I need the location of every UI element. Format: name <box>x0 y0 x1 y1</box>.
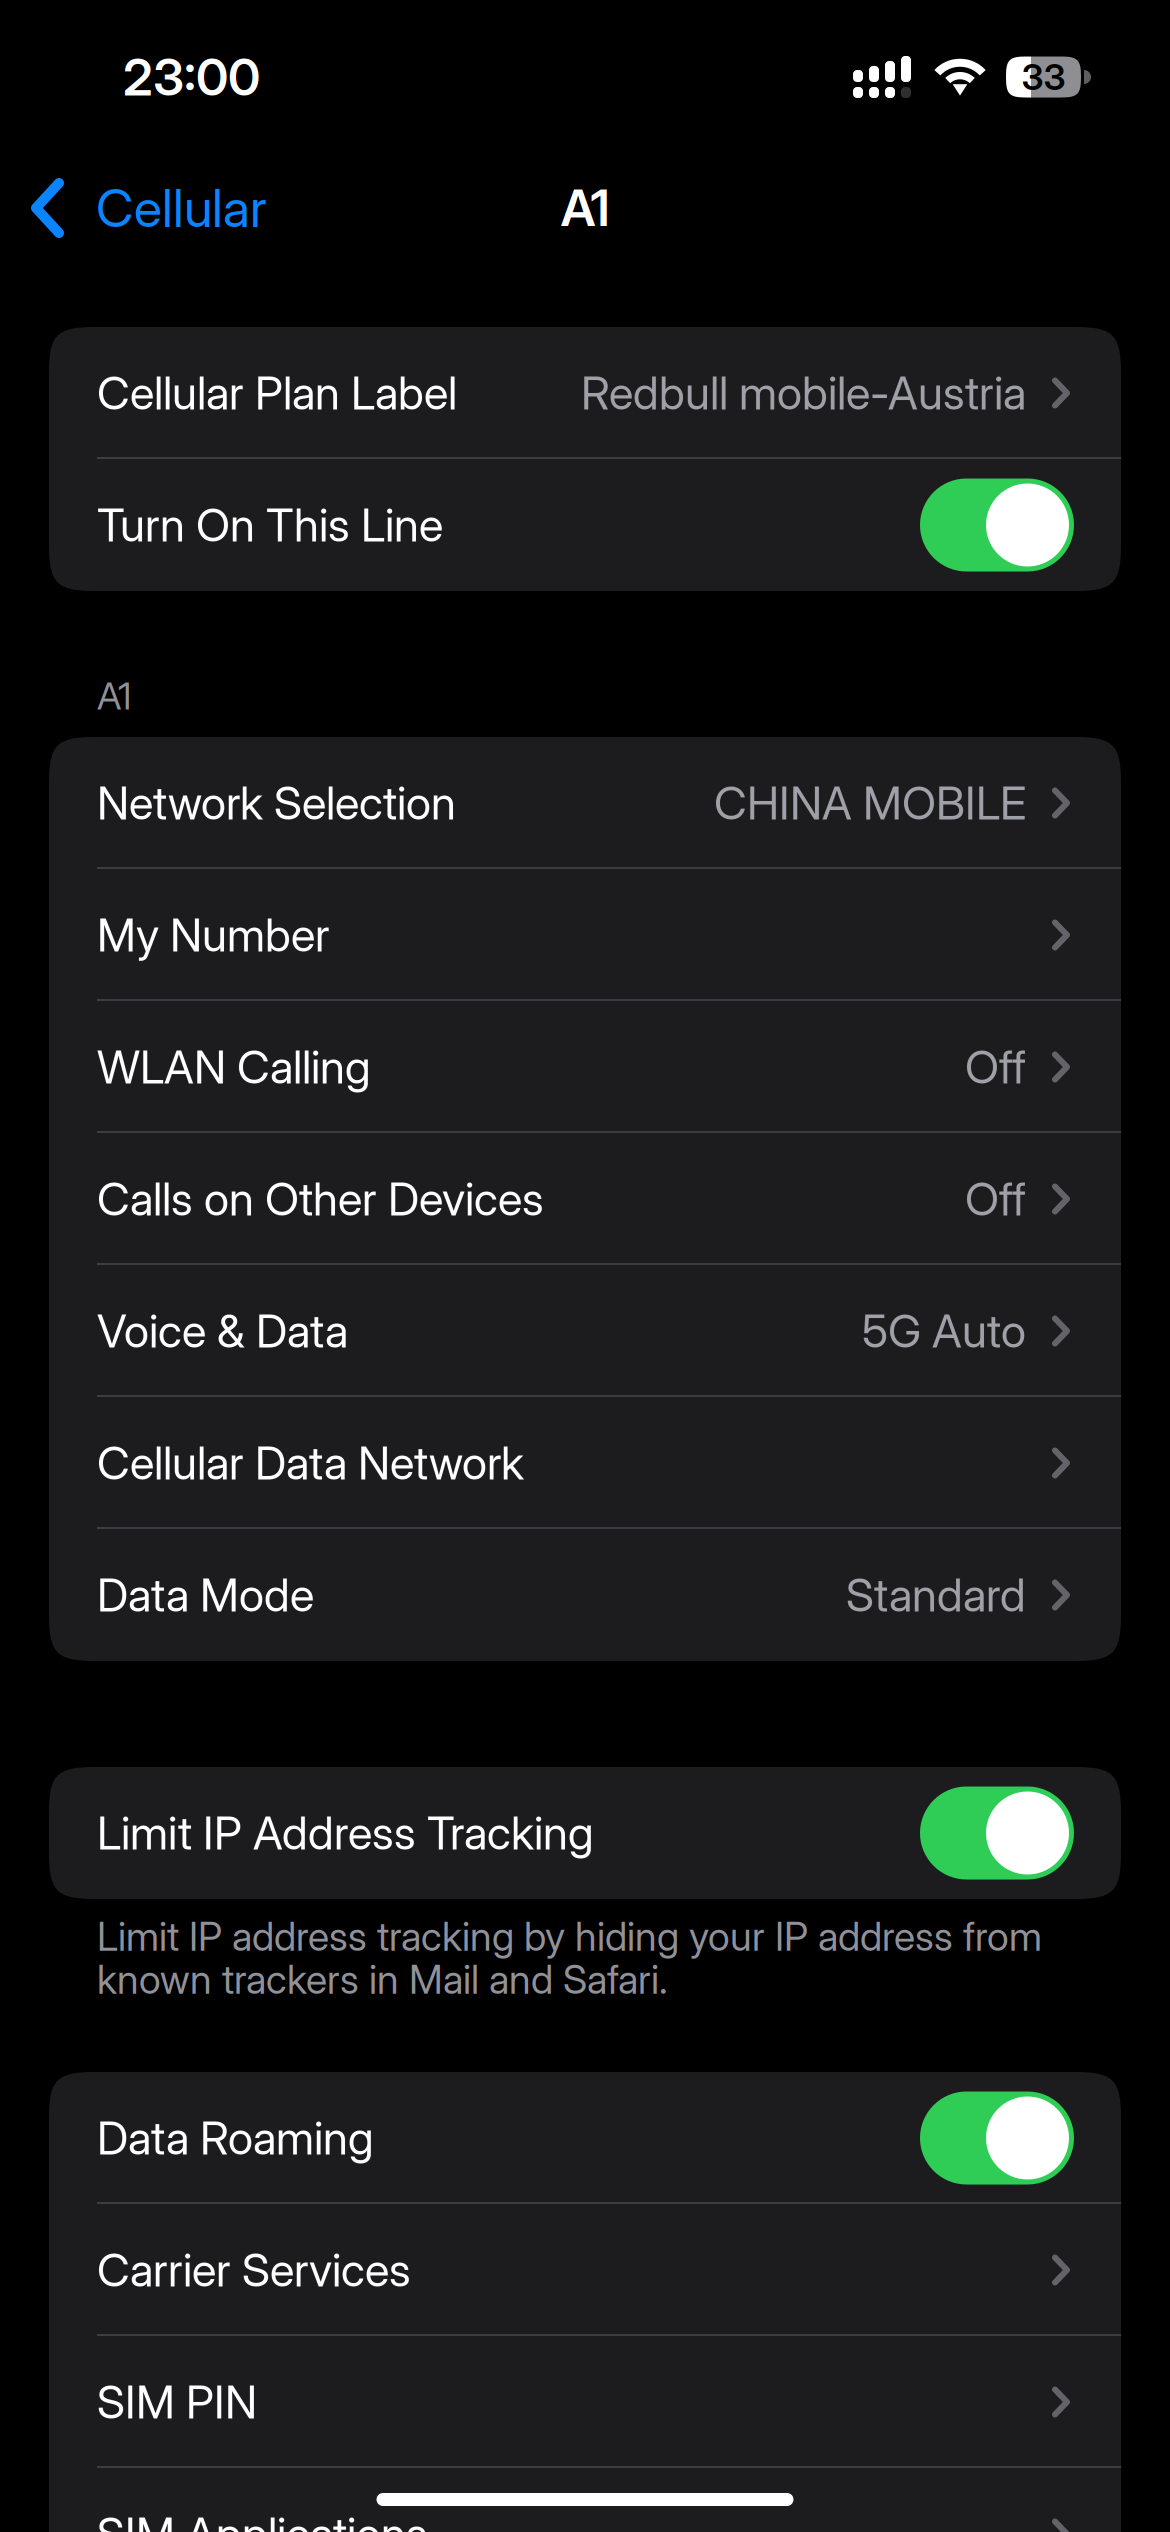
staticText: Network Selection <box>97 776 456 830</box>
button[interactable]: Voice & Data <box>49 1265 1121 1397</box>
staticText: Calls on Other Devices <box>97 1172 544 1226</box>
staticText: Off <box>965 1040 1026 1094</box>
staticText: A1 <box>560 177 609 239</box>
button[interactable]: Data Roaming <box>49 2072 1121 2204</box>
button[interactable]: Cellular Plan Label <box>49 327 1121 459</box>
staticText: Cellular Data Network <box>97 1436 524 1490</box>
staticText: 23:00 <box>123 46 260 108</box>
staticText: Standard <box>846 1568 1026 1622</box>
staticText: Limit IP Address Tracking <box>97 1806 594 1860</box>
staticText: CHINA MOBILE <box>714 776 1026 830</box>
button[interactable]: Calls on Other Devices <box>49 1133 1121 1265</box>
staticText: known trackers in Mail and Safari. <box>97 1956 668 2003</box>
button[interactable]: Cellular Data Network <box>49 1397 1121 1529</box>
button[interactable]: My Number <box>49 869 1121 1001</box>
staticText: WLAN Calling <box>97 1040 371 1094</box>
button[interactable]: Carrier Services <box>49 2204 1121 2336</box>
staticText: Carrier Services <box>97 2243 411 2297</box>
button[interactable]: Data Mode <box>49 1529 1121 1661</box>
staticText: Turn On This Line <box>97 498 443 552</box>
staticText: Off <box>965 1172 1026 1226</box>
staticText: Voice & Data <box>97 1304 348 1358</box>
staticText: A1 <box>97 673 132 719</box>
staticText: Cellular Plan Label <box>97 366 457 420</box>
staticText: Cellular <box>96 176 267 239</box>
staticText: Data Roaming <box>97 2111 374 2165</box>
staticText: Data Mode <box>97 1568 314 1622</box>
staticText: 33 <box>1021 55 1065 99</box>
staticText: Redbull mobile-Austria <box>581 366 1026 420</box>
button[interactable]: WLAN Calling <box>49 1001 1121 1133</box>
button[interactable]: SIM PIN <box>49 2336 1121 2468</box>
button[interactable]: SIM Applications <box>49 2468 1121 2532</box>
staticText: SIM Applications <box>97 2507 428 2532</box>
button[interactable]: Cellular <box>0 158 285 258</box>
staticText: Limit IP address tracking by hiding your… <box>97 1913 1042 1960</box>
button[interactable]: Limit IP Address Tracking <box>49 1767 1121 1899</box>
button[interactable]: Network Selection <box>49 737 1121 869</box>
button[interactable]: Turn On This Line <box>49 459 1121 591</box>
staticText: 5G Auto <box>862 1304 1026 1358</box>
staticText: SIM PIN <box>97 2375 257 2429</box>
staticText: My Number <box>97 908 330 962</box>
